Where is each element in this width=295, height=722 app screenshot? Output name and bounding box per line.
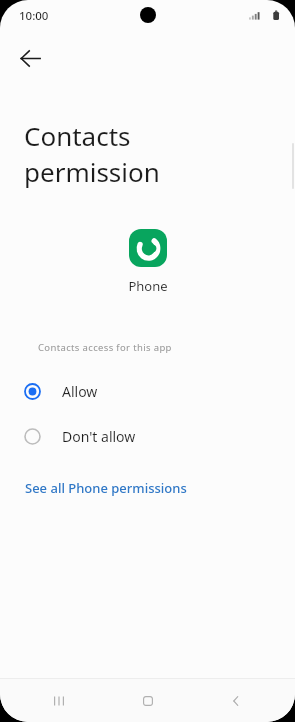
button[interactable]: Back — [8, 36, 52, 80]
button[interactable]: Home — [118, 679, 178, 722]
button[interactable]: Allow — [0, 369, 295, 414]
staticText: Phone — [128, 277, 168, 295]
button[interactable]: Recents — [29, 679, 89, 722]
staticText: Don't allow — [62, 427, 136, 446]
staticText: Contacts permission — [24, 118, 160, 190]
staticText: 10:00 — [19, 8, 49, 24]
button[interactable]: See all Phone permissions — [17, 473, 195, 503]
staticText: Contacts access for this app — [38, 341, 172, 354]
button[interactable]: Back — [206, 679, 266, 722]
staticText: Allow — [62, 382, 98, 401]
button[interactable]: Don't allow — [0, 414, 295, 459]
staticText: See all Phone permissions — [25, 479, 187, 497]
